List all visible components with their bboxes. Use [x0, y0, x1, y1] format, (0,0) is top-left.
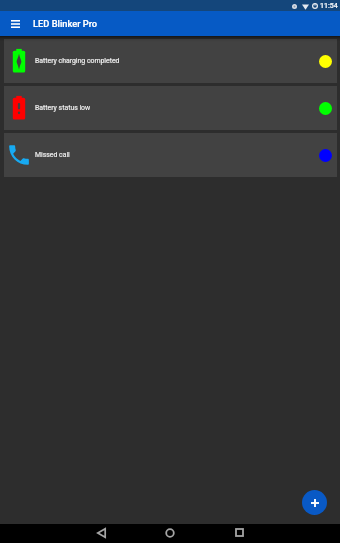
staticText: Battery status low — [35, 104, 91, 112]
button[interactable]: Add — [302, 490, 327, 515]
button[interactable]: Home — [157, 523, 183, 542]
button[interactable]: Battery status low — [4, 86, 337, 130]
button[interactable]: Missed call — [4, 133, 337, 177]
button[interactable]: Open navigation menu — [7, 16, 23, 32]
staticText: Battery charging completed — [35, 57, 120, 65]
button[interactable]: Battery charging completed — [4, 39, 337, 83]
staticText: 11:54 — [320, 2, 338, 10]
button[interactable]: Back — [88, 523, 114, 542]
staticText: Missed call — [35, 151, 70, 159]
button[interactable]: Recent apps — [226, 523, 252, 542]
staticText: LED Blinker Pro — [33, 18, 98, 29]
